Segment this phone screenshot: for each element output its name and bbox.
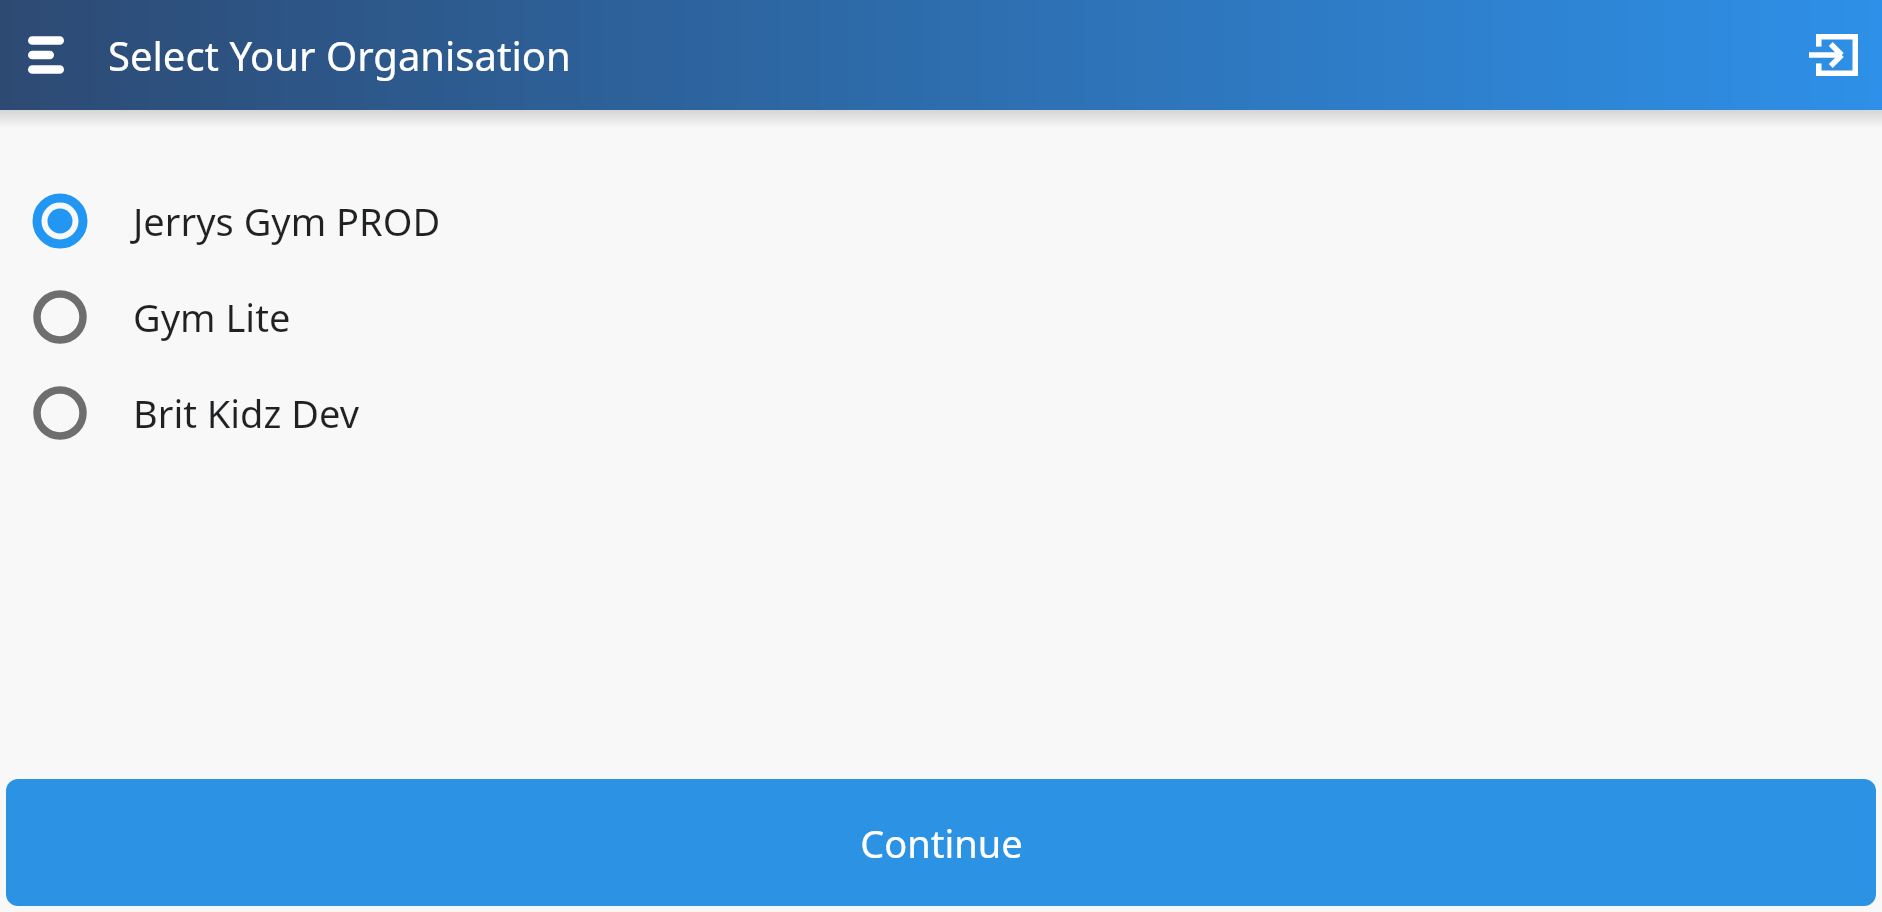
- staticText: Gym Lite: [133, 291, 291, 343]
- button[interactable]: Jerrys Gym PROD: [0, 173, 1882, 269]
- staticText: Brit Kidz Dev: [133, 387, 359, 439]
- button[interactable]: Continue: [6, 779, 1876, 906]
- button[interactable]: Open navigation menu: [14, 24, 76, 86]
- button[interactable]: Gym Lite: [0, 269, 1882, 365]
- button[interactable]: Log out: [1806, 24, 1868, 86]
- staticText: Jerrys Gym PROD: [133, 195, 441, 247]
- staticText: Continue: [860, 817, 1023, 869]
- staticText: Select Your Organisation: [108, 28, 571, 82]
- button[interactable]: Brit Kidz Dev: [0, 365, 1882, 461]
